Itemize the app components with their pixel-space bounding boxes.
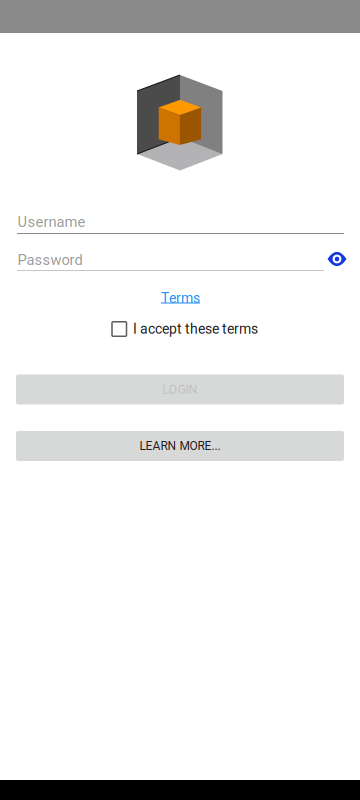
button[interactable]: LOGIN (16, 374, 344, 404)
button[interactable]: Show password (321, 245, 353, 273)
button[interactable]: Terms (151, 287, 210, 309)
staticText: Password (17, 251, 82, 269)
button[interactable]: LEARN MORE... (16, 431, 344, 461)
button[interactable]: I accept these terms (112, 318, 264, 340)
staticText: I accept these terms (133, 321, 258, 337)
staticText: Terms (161, 290, 200, 306)
staticText: Username (17, 213, 85, 231)
staticText: LEARN MORE... (139, 439, 220, 453)
staticText: LOGIN (162, 382, 197, 397)
